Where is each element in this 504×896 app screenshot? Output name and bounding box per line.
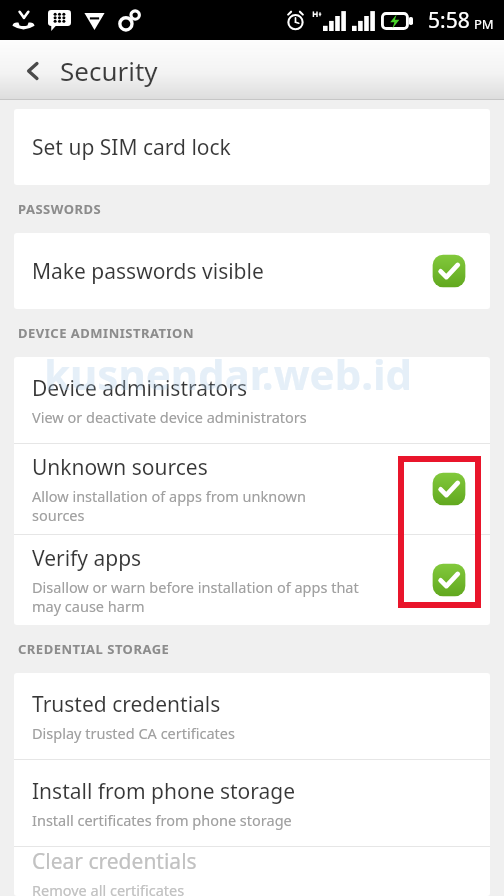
staticText: Security (60, 53, 158, 88)
other: Back (18, 56, 48, 86)
button[interactable]: Install from phone storage (14, 760, 490, 846)
staticText: kusnendar.web.id (44, 345, 413, 402)
staticText: Verify apps (32, 544, 142, 573)
staticText: Allow installation of apps from unknown … (32, 486, 306, 525)
button[interactable]: Make passwords visible (14, 233, 490, 309)
staticText: Remove all certificates (32, 880, 185, 896)
button[interactable]: Back (12, 47, 164, 94)
staticText: Trusted credentials (32, 690, 221, 719)
staticText: View or deactivate device administrators (32, 407, 307, 427)
staticText: Unknown sources (32, 453, 208, 482)
staticText: CREDENTIAL STORAGE (18, 640, 170, 658)
staticText: Make passwords visible (32, 257, 264, 286)
staticText: Disallow or warn before installation of … (32, 577, 359, 616)
button[interactable]: Toggle, checked (430, 470, 468, 508)
button[interactable]: Clear credentials (14, 847, 490, 896)
staticText: DEVICE ADMINISTRATION (18, 324, 194, 342)
button[interactable]: Device administrators (14, 357, 490, 443)
button[interactable]: Set up SIM card lock (14, 109, 490, 185)
staticText: Device administrators (32, 374, 248, 403)
staticText: Set up SIM card lock (32, 133, 231, 162)
staticText: PM (474, 15, 494, 33)
staticText: PASSWORDS (18, 200, 102, 218)
staticText: Clear credentials (32, 847, 197, 876)
button[interactable]: Trusted credentials (14, 673, 490, 759)
staticText: Install from phone storage (32, 777, 296, 806)
button[interactable]: Verify apps (14, 535, 490, 625)
button[interactable]: Toggle, checked (430, 561, 468, 599)
staticText: Display trusted CA certificates (32, 723, 235, 743)
staticText: 5:58 (428, 6, 470, 35)
button[interactable]: Toggle, checked (430, 252, 468, 290)
staticText: Install certificates from phone storage (32, 810, 292, 830)
button[interactable]: Unknown sources (14, 444, 490, 534)
